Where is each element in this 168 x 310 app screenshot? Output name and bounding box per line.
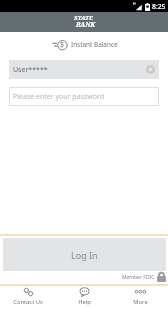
staticText: Log In: [71, 249, 98, 261]
staticText: STATE: [74, 14, 93, 22]
staticText: 8:25: [152, 2, 166, 11]
staticText: BANK: [76, 20, 96, 29]
button[interactable]: Help: [56, 284, 112, 309]
staticText: Please enter your password: [13, 92, 105, 102]
staticText: User*****: [13, 65, 48, 75]
button[interactable]: Please enter your password: [9, 87, 159, 106]
staticText: More: [133, 298, 148, 306]
button[interactable]: Clear: [146, 65, 155, 74]
staticText: Contact Us: [13, 298, 43, 306]
staticText: Member FDIC: [122, 274, 155, 281]
button[interactable]: Contact Us: [0, 284, 56, 309]
staticText: Help: [78, 298, 91, 306]
staticText: $: [60, 40, 65, 50]
staticText: Instant Balance: [71, 40, 118, 49]
button[interactable]: User*****: [9, 60, 159, 79]
button[interactable]: Log In: [3, 238, 166, 271]
button[interactable]: More: [112, 284, 168, 309]
button[interactable]: $: [0, 36, 168, 53]
